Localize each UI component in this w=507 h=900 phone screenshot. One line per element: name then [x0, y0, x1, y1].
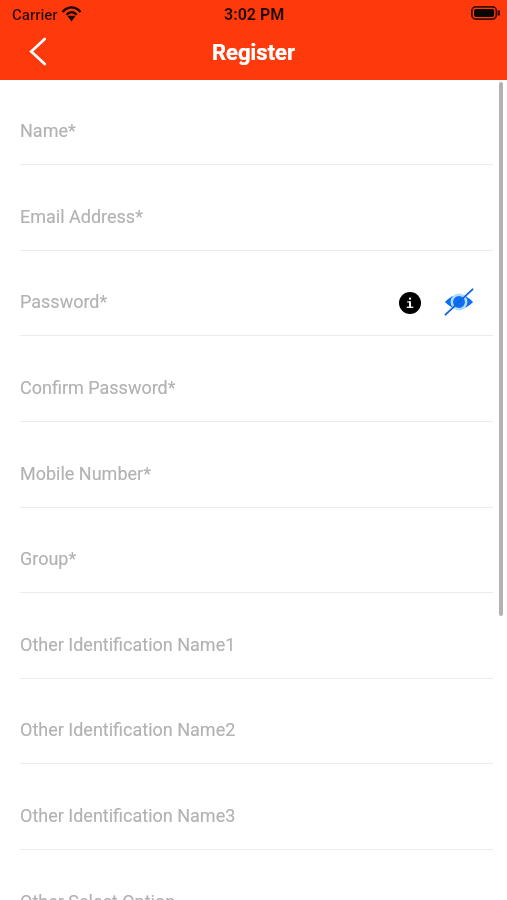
button[interactable]: Mobile Number*	[0, 422, 507, 508]
staticText: Password*	[20, 291, 108, 312]
staticText: Other Identification Name2	[20, 719, 236, 740]
staticText: Other Identification Name1	[20, 634, 236, 655]
staticText: Name*	[20, 120, 76, 141]
staticText: Confirm Password*	[20, 377, 176, 398]
button[interactable]: Password*	[0, 250, 507, 336]
staticText: 3:02 PM	[224, 5, 285, 24]
button[interactable]: Name*	[0, 79, 507, 165]
staticText: Group*	[20, 548, 77, 569]
button[interactable]: Show password	[443, 286, 474, 317]
button[interactable]: Back	[21, 35, 57, 69]
button[interactable]: Email Address*	[0, 165, 507, 251]
button[interactable]: Group*	[0, 507, 507, 593]
button[interactable]: Password info	[398, 291, 421, 314]
staticText: Mobile Number*	[20, 463, 151, 484]
button[interactable]: Other Select Option	[0, 850, 507, 900]
other: Battery full	[471, 6, 500, 20]
staticText: Register	[0, 40, 507, 66]
staticText: Other Select Option	[20, 891, 176, 900]
staticText: Email Address*	[20, 206, 143, 227]
button[interactable]: Other Identification Name1	[0, 593, 507, 679]
staticText: Carrier	[12, 6, 58, 24]
staticText: Other Identification Name3	[20, 805, 236, 826]
button[interactable]: Confirm Password*	[0, 336, 507, 422]
button[interactable]: Other Identification Name2	[0, 678, 507, 764]
button[interactable]: Other Identification Name3	[0, 764, 507, 850]
